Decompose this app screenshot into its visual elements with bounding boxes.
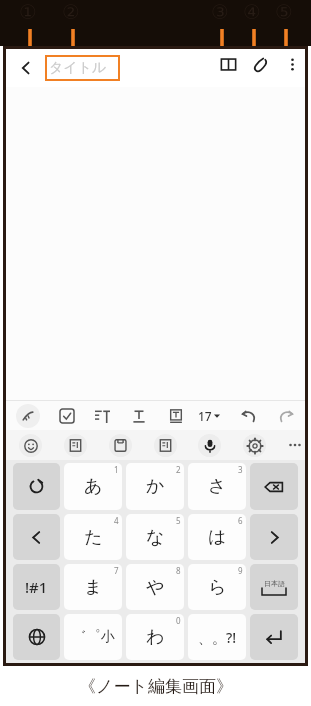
button[interactable]: Card (152, 430, 178, 460)
staticText: ① (19, 0, 37, 23)
staticText: !#1 (25, 577, 48, 597)
staticText: タイトル (49, 59, 107, 77)
button[interactable]: は (188, 514, 246, 560)
staticText: ら (208, 576, 227, 599)
button[interactable]: Checklist (52, 401, 82, 430)
button[interactable]: More (280, 430, 310, 460)
button[interactable]: か (126, 463, 184, 510)
staticText: か (146, 475, 165, 498)
staticText: ② (62, 0, 80, 23)
button[interactable]: わ (126, 614, 184, 660)
button[interactable]: Pen (13, 401, 43, 430)
staticText: 6 (238, 515, 243, 526)
button[interactable]: enter (250, 614, 298, 660)
button[interactable]: Undo (234, 401, 264, 430)
staticText: や (146, 576, 165, 599)
button[interactable]: Settings (241, 430, 267, 460)
button[interactable]: た (64, 514, 122, 560)
button[interactable]: right (250, 514, 298, 560)
staticText: ⑤ (275, 0, 293, 23)
staticText: 8 (176, 565, 181, 576)
button[interactable]: del (250, 463, 298, 510)
staticText: わ (146, 626, 165, 649)
button[interactable]: ま (64, 564, 122, 610)
button[interactable]: Attach (245, 49, 275, 79)
button[interactable]: More options (277, 49, 307, 79)
button[interactable]: あ (64, 463, 122, 510)
staticText: は (208, 526, 227, 549)
staticText: 5 (176, 515, 181, 526)
button[interactable]: space (250, 564, 298, 610)
staticText: ④ (243, 0, 261, 23)
button[interactable]: !#1 (13, 564, 60, 610)
staticText: 日本語 (264, 579, 285, 588)
button[interactable]: ら (188, 564, 246, 610)
staticText: 《ノート編集画面》 (79, 676, 233, 697)
button[interactable]: 、。?! (188, 614, 246, 660)
staticText: 9 (238, 565, 243, 576)
button[interactable]: Save (107, 430, 133, 460)
button[interactable]: Emoji (17, 430, 43, 460)
button[interactable]: Text box (161, 401, 191, 430)
staticText: ま (84, 576, 103, 599)
button[interactable]: Sticker (62, 430, 88, 460)
button[interactable]: left (13, 514, 60, 560)
button[interactable]: Voice input (196, 430, 222, 460)
button[interactable]: な (126, 514, 184, 560)
button[interactable]: 17 (198, 401, 228, 430)
button[interactable]: Redo (271, 401, 301, 430)
staticText: ③ (211, 0, 229, 23)
staticText: 2 (176, 464, 181, 475)
staticText: 17 (198, 408, 212, 424)
button[interactable]: refresh (13, 463, 60, 510)
staticText: た (84, 526, 103, 549)
staticText: さ (208, 475, 227, 498)
button[interactable]: タイトル (45, 55, 120, 81)
button[interactable]: Back (11, 53, 41, 83)
staticText: 4 (114, 515, 119, 526)
button[interactable]: Paragraph (87, 401, 117, 430)
staticText: 0 (176, 615, 181, 626)
staticText: 3 (238, 464, 243, 475)
button[interactable]: Book view (213, 49, 243, 79)
staticText: ゛゜小 (72, 628, 115, 646)
staticText: 、。?! (198, 628, 237, 647)
button[interactable]: ゛゜小 (64, 614, 122, 660)
staticText: あ (84, 475, 103, 498)
button[interactable]: Text style (124, 401, 154, 430)
staticText: 7 (114, 565, 119, 576)
staticText: な (146, 526, 165, 549)
button[interactable]: globe (13, 614, 60, 660)
button[interactable]: さ (188, 463, 246, 510)
staticText: 1 (114, 464, 119, 475)
button[interactable]: や (126, 564, 184, 610)
